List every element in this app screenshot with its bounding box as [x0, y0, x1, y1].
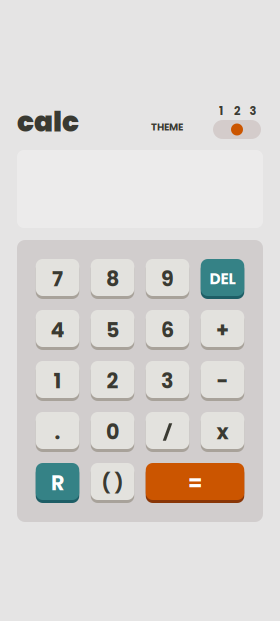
button[interactable]: =: [146, 463, 244, 503]
button[interactable]: R: [36, 463, 79, 503]
staticText: 7: [52, 264, 63, 293]
button[interactable]: 9: [146, 259, 189, 299]
button[interactable]: 4: [36, 310, 79, 350]
staticText: -: [216, 366, 228, 395]
staticText: +: [216, 315, 229, 344]
staticText: ( ): [101, 470, 123, 496]
button[interactable]: 8: [91, 259, 134, 299]
button[interactable]: 1: [36, 361, 79, 401]
button[interactable]: x: [201, 412, 244, 452]
staticText: 6: [161, 315, 174, 344]
button[interactable]: ( ): [91, 463, 134, 503]
button[interactable]: 0: [91, 412, 134, 452]
staticText: 8: [106, 264, 119, 293]
staticText: =: [188, 468, 202, 497]
staticText: .: [54, 417, 60, 446]
staticText: 1: [219, 103, 223, 119]
button[interactable]: Theme: [213, 120, 261, 139]
button[interactable]: +: [201, 310, 244, 350]
staticText: 5: [106, 315, 119, 344]
staticText: 4: [50, 315, 64, 344]
button[interactable]: 6: [146, 310, 189, 350]
staticText: x: [216, 417, 228, 446]
staticText: 0: [106, 417, 119, 446]
button[interactable]: .: [36, 412, 79, 452]
button[interactable]: 5: [91, 310, 134, 350]
staticText: 1: [53, 366, 61, 395]
button[interactable]: -: [201, 361, 244, 401]
button[interactable]: DEL: [201, 259, 244, 299]
staticText: 3: [161, 366, 174, 395]
staticText: 2: [106, 366, 118, 395]
staticText: THEME: [151, 120, 183, 134]
button[interactable]: 2: [91, 361, 134, 401]
staticText: 2: [234, 103, 240, 119]
button[interactable]: [146, 412, 189, 452]
staticText: DEL: [209, 268, 235, 290]
staticText: calc: [17, 102, 79, 141]
staticText: 9: [161, 264, 174, 293]
staticText: 3: [249, 103, 256, 119]
staticText: R: [51, 468, 64, 497]
button[interactable]: 3: [146, 361, 189, 401]
button[interactable]: 7: [36, 259, 79, 299]
